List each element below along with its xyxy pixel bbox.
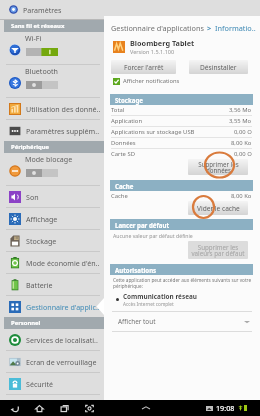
staticText: Lancer par défaut — [115, 221, 170, 229]
button[interactable]: Désinstaller — [189, 60, 248, 74]
staticText: Services de localisati.. — [26, 335, 98, 345]
button[interactable]: Affichage — [0, 208, 104, 229]
button[interactable]: Son — [0, 186, 104, 207]
staticText: Paramètres supplém.. — [26, 126, 100, 136]
button[interactable]: Supprimer les données — [188, 159, 248, 175]
button[interactable]: Mode économie d'én.. — [0, 252, 104, 273]
staticText: Cette application peut accéder aux éléme… — [113, 277, 252, 283]
staticText: Stockage — [26, 236, 57, 246]
staticText: Utilisation des donné.. — [26, 104, 101, 114]
staticText: Aucune valeur par défaut définie — [113, 232, 193, 239]
button[interactable]: Home — [32, 401, 47, 416]
button[interactable]: Paramètres supplém.. — [0, 120, 104, 141]
staticText: 8,00 Ko — [231, 192, 252, 200]
button[interactable]: Bluetooth — [0, 65, 104, 97]
button[interactable]: Supprimer les valeurs par défaut — [188, 241, 248, 259]
button[interactable]: Gestionnaire d'applic.. — [0, 296, 104, 317]
staticText: Gestionnaire d'applications — [111, 23, 204, 33]
button[interactable]: Screenshot — [82, 401, 97, 416]
button[interactable]: Ecran de verrouillage — [0, 351, 104, 372]
button[interactable] — [26, 169, 58, 177]
button[interactable]: Batterie — [0, 274, 104, 295]
staticText: Cache — [115, 182, 134, 190]
staticText: Désinstaller — [200, 63, 237, 72]
staticText: Wi-Fi — [25, 33, 42, 43]
button[interactable]: Afficher notifications — [113, 77, 180, 85]
staticText: Cache — [111, 192, 128, 200]
staticText: Supprimer les données — [198, 160, 239, 175]
button[interactable]: Mode blocage — [0, 153, 104, 185]
staticText: 0,00 O — [234, 128, 252, 136]
staticText: 19:08 — [216, 403, 235, 413]
staticText: périphérique: — [113, 283, 143, 289]
staticText: 8,00 Ko — [231, 139, 252, 147]
staticText: Application — [111, 117, 143, 125]
staticText: Ecran de verrouillage — [26, 357, 97, 367]
staticText: Périphérique — [11, 143, 50, 151]
staticText: Informatio.. — [215, 23, 256, 33]
staticText: Autorisations — [115, 266, 157, 274]
button[interactable]: Paramètres — [0, 0, 104, 19]
staticText: Version 1.5.1.100 — [130, 48, 175, 55]
staticText: > — [207, 23, 212, 33]
staticText: Gestionnaire d'applic.. — [26, 302, 100, 312]
staticText: Afficher tout — [118, 317, 156, 326]
staticText: Mode blocage — [25, 154, 73, 164]
staticText: Personnel — [11, 319, 41, 327]
button[interactable]: Recent apps — [57, 401, 72, 416]
button[interactable]: Gestionnaire d'applications — [111, 23, 260, 33]
staticText: Supprimer les valeurs par défaut — [191, 243, 245, 258]
button[interactable]: Show hidden icons — [139, 401, 153, 415]
staticText: Bluetooth — [25, 66, 58, 76]
staticText: Données — [111, 139, 136, 147]
staticText: Applications sur stockage USB — [111, 128, 195, 136]
staticText: Accès Internet complet — [123, 301, 174, 307]
button[interactable]: Vider le cache — [188, 201, 248, 215]
staticText: 0,00 O — [234, 150, 252, 158]
staticText: Batterie — [26, 280, 53, 290]
button[interactable]: Utilisation des donné.. — [0, 98, 104, 119]
button[interactable] — [26, 48, 58, 56]
staticText: Vider le cache — [197, 204, 240, 213]
staticText: 3,56 Mo — [229, 106, 252, 114]
staticText: Total — [111, 106, 125, 114]
staticText: Affichage — [26, 214, 58, 224]
staticText: Sans fil et réseaux — [11, 22, 65, 30]
button[interactable]: Forcer l'arrêt — [111, 60, 176, 74]
staticText: Communication réseau — [123, 292, 197, 301]
staticText: Son — [26, 192, 39, 202]
button[interactable]: Sécurité — [0, 373, 104, 394]
staticText: Forcer l'arrêt — [124, 63, 164, 72]
staticText: Paramètres — [23, 5, 62, 15]
staticText: Sécurité — [26, 379, 54, 389]
staticText: Mode économie d'én.. — [26, 258, 100, 268]
button[interactable]: Afficher tout — [118, 312, 250, 331]
staticText: 3,55 Mo — [229, 117, 252, 125]
button[interactable]: Back — [7, 401, 22, 416]
button[interactable]: Stockage — [0, 230, 104, 251]
staticText: Stockage — [115, 96, 143, 104]
button[interactable]: Wi-Fi — [0, 32, 104, 64]
button[interactable]: Services de localisati.. — [0, 329, 104, 350]
staticText: Carte SD — [111, 150, 135, 158]
staticText: Afficher notifications — [123, 77, 180, 85]
staticText: Bloomberg Tablet — [130, 38, 195, 48]
button[interactable] — [26, 81, 58, 89]
